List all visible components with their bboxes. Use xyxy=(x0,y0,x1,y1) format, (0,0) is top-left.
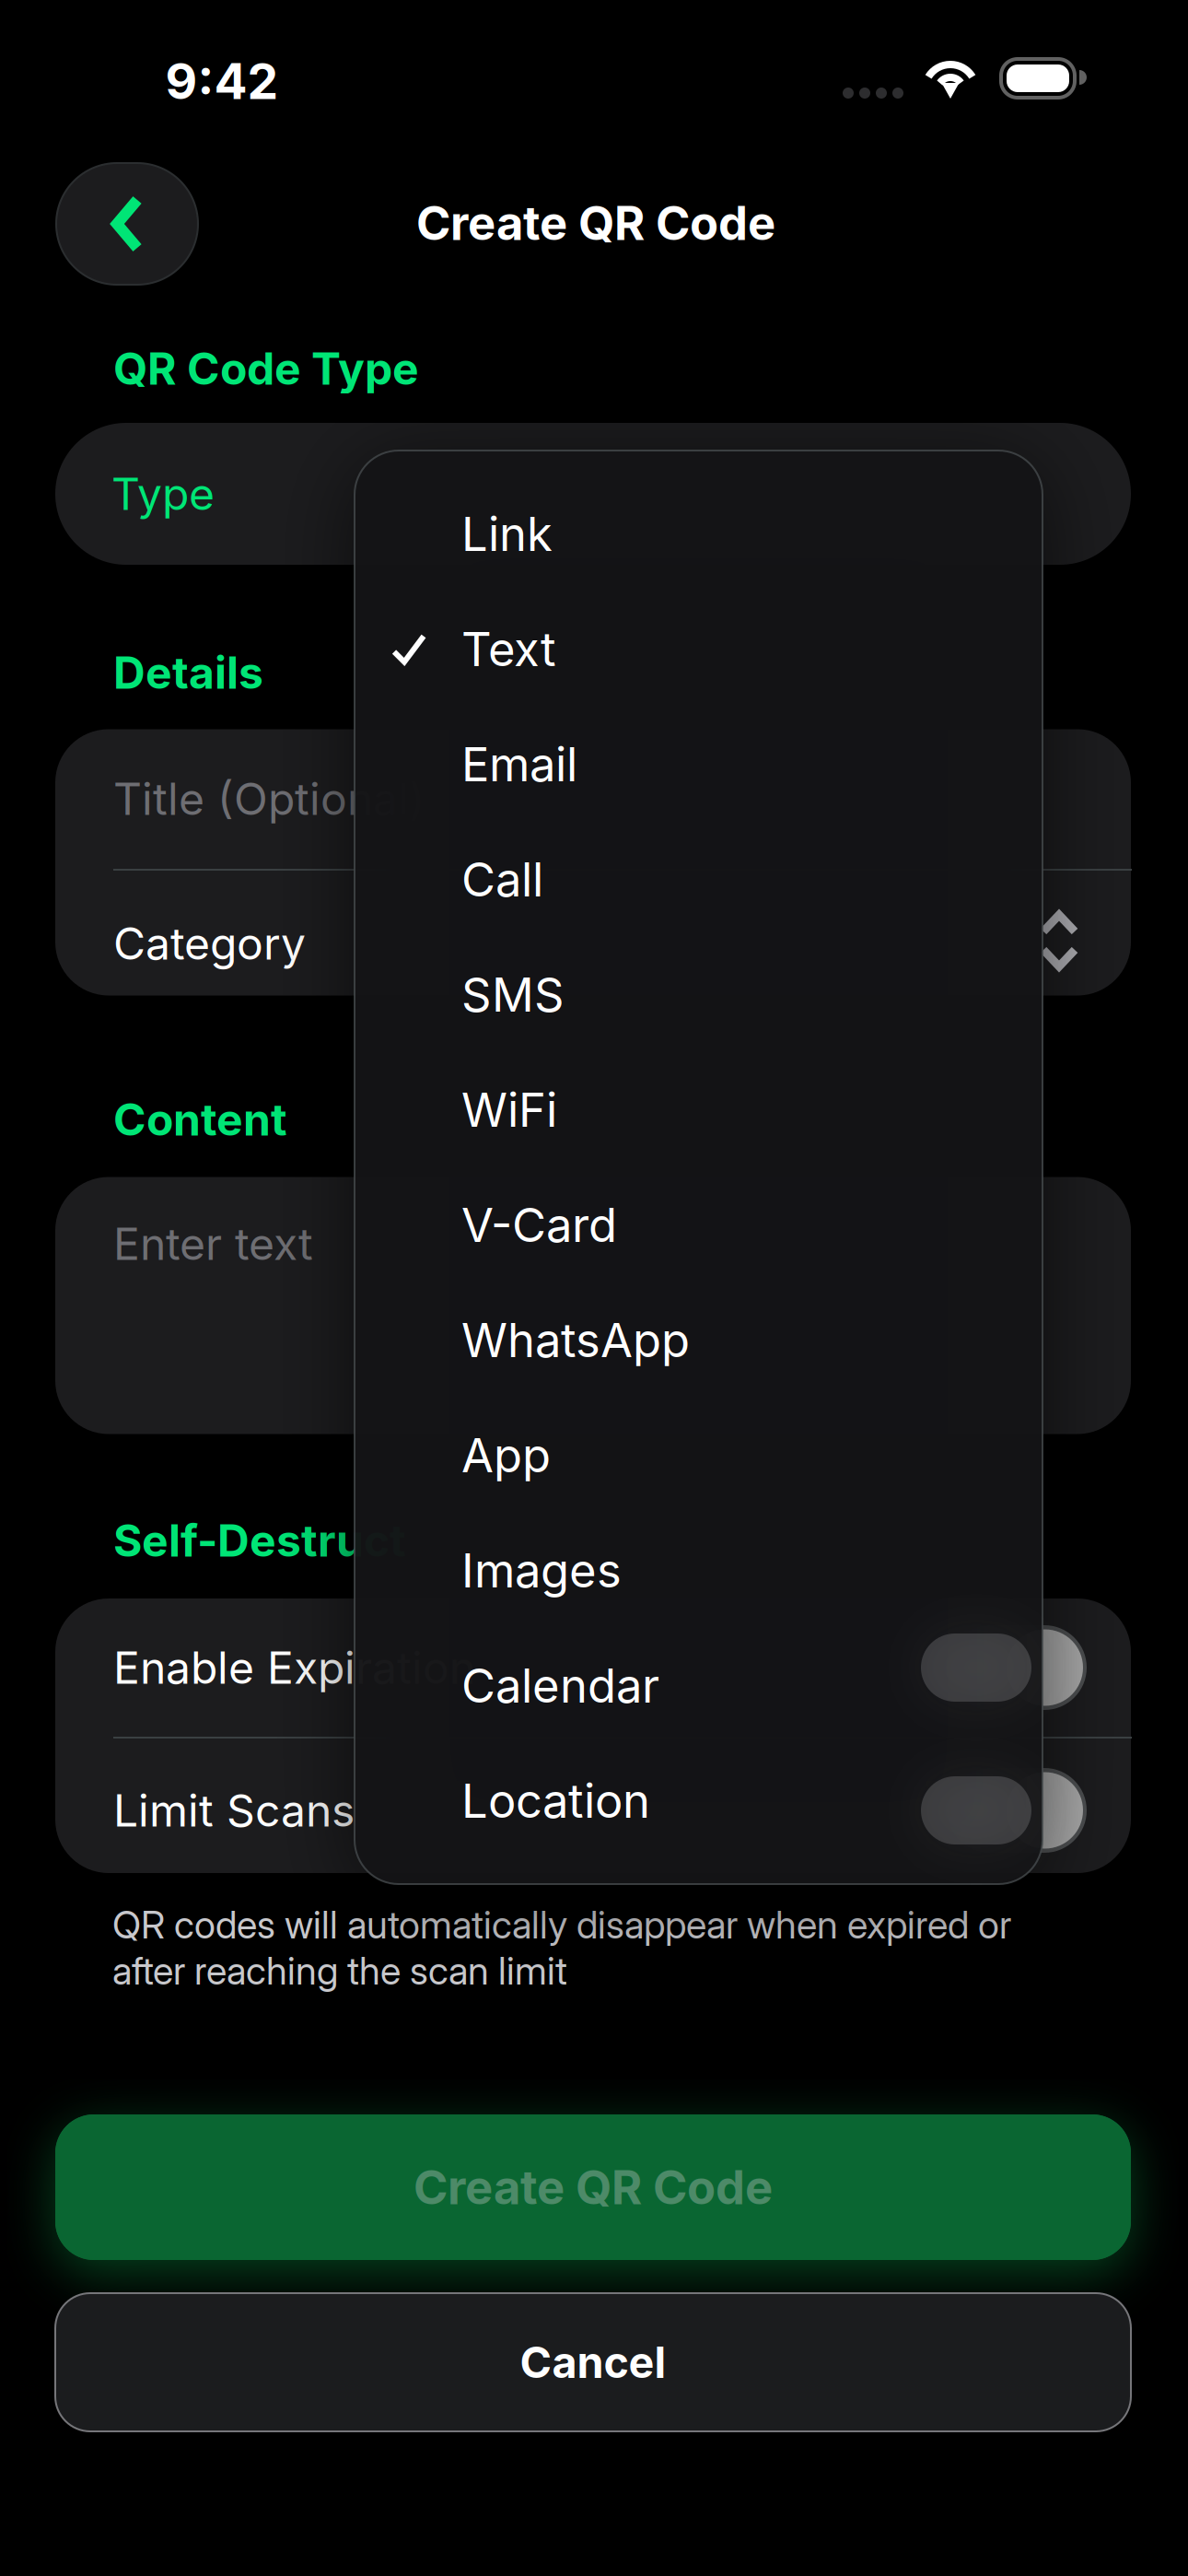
button[interactable]: Cancel xyxy=(55,2293,1131,2431)
staticText: Calendar xyxy=(461,1657,659,1714)
staticText: App xyxy=(461,1427,551,1483)
button[interactable]: Text xyxy=(355,591,1042,707)
button[interactable]: WiFi xyxy=(355,1052,1042,1167)
button[interactable]: Back xyxy=(56,163,198,285)
staticText: 9:42 xyxy=(165,51,279,111)
staticText: Enable Expiration xyxy=(113,1641,475,1694)
staticText: Details xyxy=(113,646,263,699)
button[interactable]: Link xyxy=(355,476,1042,591)
button[interactable]: Type xyxy=(55,423,1131,565)
button[interactable]: WhatsApp xyxy=(355,1282,1042,1398)
button[interactable]: SMS xyxy=(355,937,1042,1052)
staticText: Call xyxy=(461,851,543,908)
button[interactable]: V-Card xyxy=(355,1167,1042,1282)
button[interactable]: Location xyxy=(355,1743,1042,1858)
staticText: Limit Scans xyxy=(113,1784,355,1837)
button[interactable]: Calendar xyxy=(355,1628,1042,1743)
staticText: Enter text xyxy=(113,1217,313,1271)
staticText: WhatsApp xyxy=(461,1312,690,1368)
staticText: Text xyxy=(461,621,556,677)
staticText: QR Code Type xyxy=(113,342,419,395)
staticText: Self-Destruct xyxy=(113,1514,406,1567)
button[interactable]: Email xyxy=(355,707,1042,822)
staticText: SMS xyxy=(461,966,565,1023)
staticText: Title (Optional) xyxy=(113,772,425,826)
button[interactable]: Create QR Code xyxy=(55,2114,1131,2260)
staticText: Create QR Code xyxy=(413,2159,773,2215)
staticText: Category xyxy=(113,917,306,970)
staticText: Cancel xyxy=(520,2336,666,2388)
staticText: Content xyxy=(113,1093,287,1146)
staticText: Images xyxy=(461,1542,622,1599)
staticText: Email xyxy=(461,736,577,792)
staticText: Type xyxy=(111,467,215,521)
button[interactable]: Call xyxy=(355,822,1042,937)
staticText: Link xyxy=(461,506,553,562)
staticText: Location xyxy=(461,1772,650,1829)
staticText: V-Card xyxy=(461,1197,617,1253)
button[interactable]: Images xyxy=(355,1513,1042,1628)
button[interactable]: App xyxy=(355,1398,1042,1513)
staticText: QR codes will automatically disappear wh… xyxy=(112,1902,1011,1994)
staticText: Create QR Code xyxy=(416,195,775,251)
staticText: WiFi xyxy=(461,1081,557,1138)
